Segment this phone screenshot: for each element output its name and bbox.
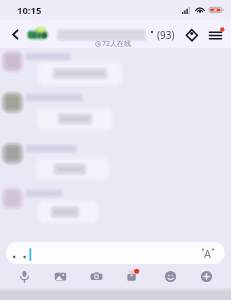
button[interactable]: Smart reply xyxy=(6,242,225,264)
button[interactable]: Emoji xyxy=(158,264,182,288)
staticText: 72人在线 xyxy=(102,39,132,49)
button[interactable]: Gift xyxy=(121,264,145,288)
button[interactable]: More xyxy=(194,264,218,288)
staticText: (93) xyxy=(157,28,175,42)
button[interactable]: Back xyxy=(4,23,26,45)
button[interactable]: Photos xyxy=(48,264,72,288)
staticText: A xyxy=(204,246,212,261)
button[interactable]: Label xyxy=(182,25,201,44)
button[interactable]: Voice message xyxy=(12,264,36,288)
button[interactable]: Camera xyxy=(84,264,108,288)
button[interactable]: Smart reply xyxy=(199,244,217,262)
button[interactable]: Menu xyxy=(205,25,225,45)
staticText: 10:15 xyxy=(17,4,42,17)
